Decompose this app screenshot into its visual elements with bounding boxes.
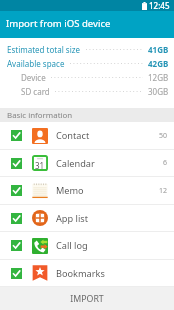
staticText: Estimated total size [7,44,81,55]
staticText: Memo [56,184,84,197]
staticText: Available space [7,58,65,69]
button[interactable]: IMPORT [0,287,174,310]
staticText: 30GB [148,86,169,97]
staticText: 12:45 [149,0,170,11]
staticText: 42GB [148,58,169,69]
staticText: Basic information [7,110,73,121]
button[interactable]: 31 [0,150,174,176]
staticText: 12 [159,186,168,196]
button[interactable]: Contact [0,122,174,149]
button[interactable]: Call log [0,232,174,259]
staticText: 50 [159,131,168,141]
button[interactable]: Memo [0,177,174,204]
staticText: SD card [21,86,50,97]
staticText: IMPORT [70,293,104,305]
staticText: Contact [56,129,90,142]
staticText: 41GB [148,44,169,55]
staticText: Calendar [56,157,95,170]
staticText: Device [21,72,46,83]
button[interactable]: App list [0,205,174,231]
staticText: App list [56,212,89,225]
staticText: Call log [56,239,88,252]
staticText: 12GB [148,72,169,83]
button[interactable]: Bookmarks [0,260,174,286]
staticText: Import from iOS device [6,17,111,30]
staticText: 6 [163,158,168,168]
staticText: Bookmarks [56,267,105,280]
staticText: 31 [35,160,45,171]
